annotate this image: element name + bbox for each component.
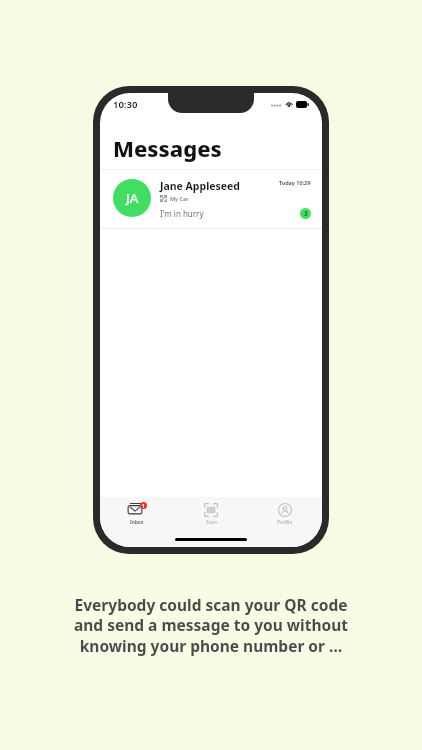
staticText: Today 10:29 <box>279 179 311 186</box>
staticText: Jane Appleseed <box>160 179 279 193</box>
staticText: 3 <box>304 209 308 218</box>
staticText: Everybody could scan your QR code and se… <box>16 594 406 657</box>
button[interactable]: JA <box>100 170 322 229</box>
staticText: Messages <box>113 133 222 163</box>
button[interactable]: Profile <box>248 497 322 531</box>
other: Scan <box>204 503 218 517</box>
staticText: JA <box>126 189 139 207</box>
staticText: I'm in hurry <box>160 208 300 219</box>
staticText: 10:30 <box>113 98 138 111</box>
staticText: Scan <box>206 519 217 526</box>
staticText: Profile <box>277 519 293 526</box>
staticText: My Car <box>170 195 189 202</box>
staticText: 1 <box>142 503 145 509</box>
staticText: Inbox <box>130 519 144 526</box>
other: Profile <box>278 503 292 517</box>
other: Inbox <box>127 502 147 517</box>
button[interactable]: Scan <box>174 497 248 531</box>
button[interactable]: Inbox <box>100 497 174 531</box>
